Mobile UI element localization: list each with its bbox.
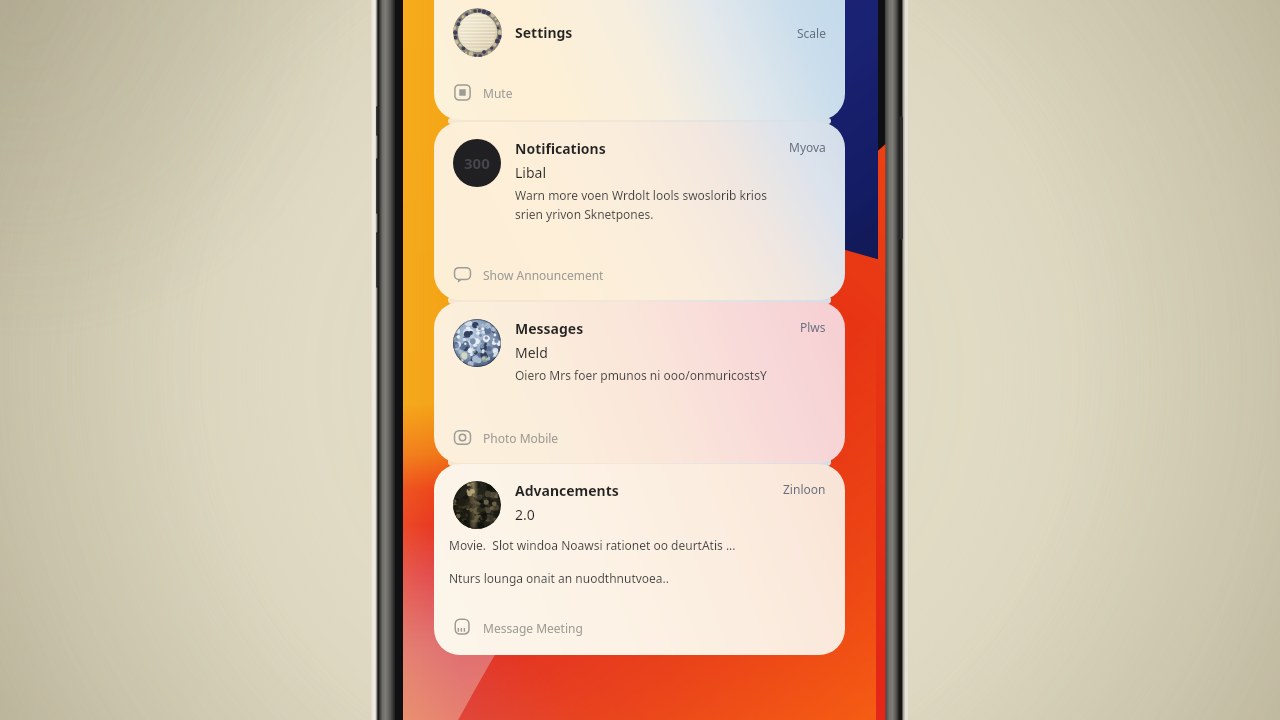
button[interactable]: 300 — [434, 122, 845, 300]
staticText: Plws — [800, 319, 826, 335]
button[interactable]: Settings — [434, 0, 845, 120]
other: Mute — [453, 83, 472, 102]
button[interactable]: Messages — [434, 302, 845, 463]
staticText: Advancements — [515, 481, 619, 500]
other: Message Meeting — [453, 618, 472, 637]
button[interactable]: Photo Mobile — [453, 428, 826, 447]
staticText: Oiero Mrs foer pmunos ni ooo/onmuricosts… — [515, 367, 767, 383]
staticText: Zinloon — [783, 481, 826, 497]
staticText: Nturs lounga onait an nuodthnutvoea.. — [449, 570, 670, 586]
staticText: Meld — [515, 343, 548, 362]
other: Photo Mobile — [453, 428, 472, 447]
staticText: Photo Mobile — [483, 430, 559, 446]
staticText: Show Announcement — [483, 267, 604, 283]
staticText: Message Meeting — [483, 620, 583, 636]
staticText: Myova — [789, 139, 826, 155]
other: Show Announcement — [453, 265, 472, 284]
staticText: Notifications — [515, 139, 606, 158]
button[interactable]: Message Meeting — [453, 618, 826, 637]
staticText: 300 — [464, 153, 490, 173]
button[interactable]: Mute — [453, 83, 826, 102]
staticText: Mute — [483, 85, 513, 101]
staticText: Movie. Slot windoa Noawsi rationet oo de… — [449, 537, 736, 553]
staticText: Settings — [515, 23, 573, 42]
staticText: Scale — [797, 25, 826, 41]
staticText: srien yrivon Sknetpones. — [515, 206, 654, 222]
button[interactable]: Advancements — [434, 464, 845, 655]
staticText: 2.0 — [515, 505, 535, 524]
button[interactable]: Show Announcement — [453, 265, 826, 284]
staticText: Messages — [515, 319, 584, 338]
staticText: Libal — [515, 163, 547, 182]
staticText: Warn more voen Wrdolt lools swoslorib kr… — [515, 187, 767, 203]
